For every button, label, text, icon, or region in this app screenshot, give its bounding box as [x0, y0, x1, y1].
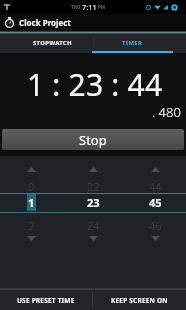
staticText: 7:11 [82, 2, 97, 12]
button[interactable]: Increment [146, 164, 164, 175]
staticText: 44 [149, 179, 162, 194]
button[interactable]: Clock Project [4, 17, 71, 28]
staticText: STOPWATCH [33, 39, 72, 47]
button[interactable]: Decrement [84, 233, 102, 244]
staticText: Clock Project [19, 17, 71, 28]
staticText: 1 : 23 : 44 [27, 64, 163, 105]
staticText: 0 [28, 179, 35, 194]
staticText: KEEP SCREEN ON [111, 296, 168, 305]
staticText: THU [71, 4, 81, 10]
staticText: 24 [87, 218, 100, 233]
button[interactable]: Increment [22, 164, 40, 175]
staticText: 46 [149, 218, 162, 233]
staticText: 1 [28, 195, 35, 210]
button[interactable]: STOPWATCH [12, 34, 92, 53]
staticText: PM [98, 4, 106, 10]
staticText: TIMER [122, 39, 143, 47]
staticText: Stop [79, 131, 107, 149]
staticText: USE PRESET TIME [17, 296, 75, 305]
button[interactable]: Decrement [146, 233, 164, 244]
staticText: 23 [87, 195, 100, 210]
staticText: 45 [149, 195, 162, 210]
staticText: 22 [87, 179, 100, 194]
staticText: 2 [28, 218, 35, 233]
button[interactable]: KEEP SCREEN ON [93, 290, 186, 310]
staticText: . 480 [152, 103, 181, 121]
button[interactable]: Stop [2, 129, 184, 150]
button[interactable]: Decrement [22, 233, 40, 244]
other: Notification [3, 3, 11, 11]
button[interactable]: TIMER [92, 34, 173, 53]
button[interactable]: USE PRESET TIME [0, 290, 92, 310]
button[interactable]: Increment [84, 164, 102, 175]
